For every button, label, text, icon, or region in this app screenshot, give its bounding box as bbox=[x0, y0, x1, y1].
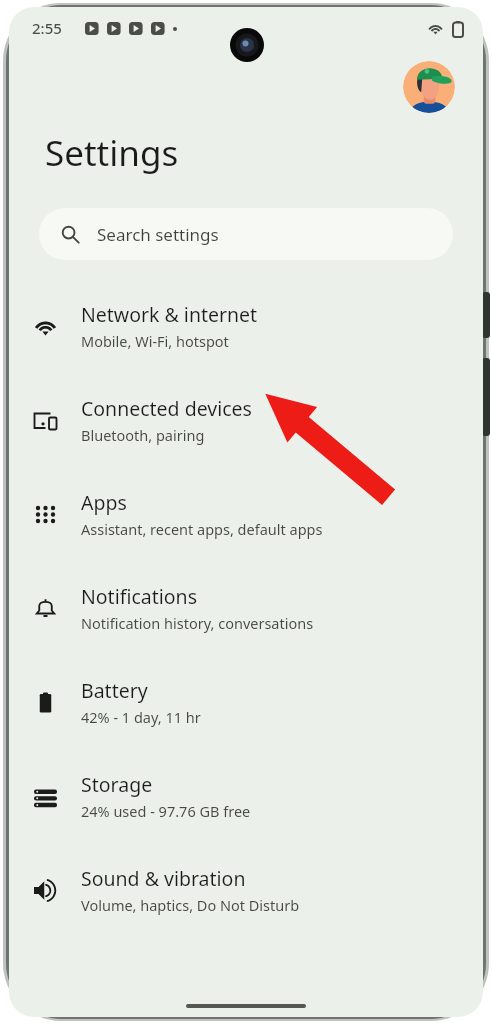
staticText: Connected devices bbox=[81, 395, 252, 422]
button[interactable]: Apps bbox=[9, 467, 483, 561]
staticText: Volume, haptics, Do Not Disturb bbox=[81, 895, 300, 915]
staticText: Settings bbox=[45, 129, 179, 177]
staticText: 42% - 1 day, 11 hr bbox=[81, 707, 201, 727]
staticText: Search settings bbox=[97, 223, 219, 246]
button[interactable]: Battery bbox=[9, 655, 483, 749]
staticText: Assistant, recent apps, default apps bbox=[81, 519, 323, 539]
button[interactable]: Storage bbox=[9, 749, 483, 843]
button[interactable]: Sound & vibration bbox=[9, 843, 483, 937]
staticText: Network & internet bbox=[81, 301, 258, 328]
staticText: Apps bbox=[81, 489, 127, 516]
button[interactable]: Connected devices bbox=[9, 373, 483, 467]
staticText: 2:55 bbox=[32, 18, 62, 38]
staticText: Sound & vibration bbox=[81, 865, 246, 892]
button[interactable]: Notifications bbox=[9, 561, 483, 655]
button[interactable]: Account bbox=[403, 61, 455, 113]
staticText: 24% used - 97.76 GB free bbox=[81, 801, 251, 821]
staticText: Bluetooth, pairing bbox=[81, 425, 205, 445]
button[interactable]: Search settings bbox=[39, 208, 453, 260]
staticText: Notifications bbox=[81, 583, 197, 610]
staticText: Storage bbox=[81, 771, 153, 798]
staticText: Notification history, conversations bbox=[81, 613, 314, 633]
staticText: Mobile, Wi-Fi, hotspot bbox=[81, 331, 229, 351]
staticText: Battery bbox=[81, 677, 148, 704]
button[interactable]: Network & internet bbox=[9, 279, 483, 373]
